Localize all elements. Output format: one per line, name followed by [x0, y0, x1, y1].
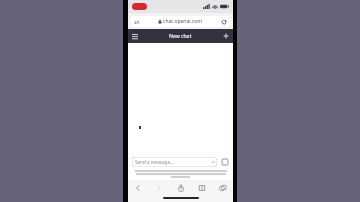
button[interactable]: Tabs [217, 182, 229, 194]
button[interactable]: Menu [130, 31, 140, 41]
button[interactable]: Send a message... [132, 157, 217, 167]
button[interactable]: Back [132, 182, 144, 194]
button[interactable]: Attach [220, 157, 229, 166]
button[interactable]: Reload [221, 19, 227, 25]
button[interactable]: New chat [221, 31, 231, 41]
button[interactable]: аA [134, 19, 140, 25]
button[interactable]: Page settings [131, 16, 230, 27]
staticText: Send a message... [135, 159, 174, 165]
button[interactable]: Forward [153, 182, 165, 194]
staticText: New chat [169, 33, 192, 40]
staticText: chat.openai.com [163, 18, 202, 25]
button[interactable]: Bookmarks [196, 182, 208, 194]
button[interactable]: Share [175, 182, 187, 194]
